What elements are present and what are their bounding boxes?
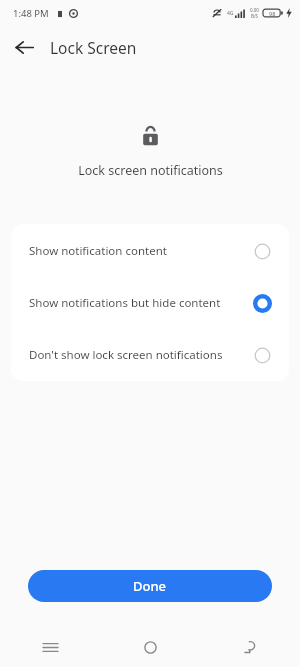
button[interactable]: Don't show lock screen notifications (11, 329, 289, 381)
staticText: Don't show lock screen notifications (29, 347, 254, 363)
button[interactable]: Home (100, 627, 200, 667)
staticText: Show notification content (29, 243, 254, 259)
staticText: Lock Screen (50, 37, 137, 58)
staticText: 1:48 PM (13, 7, 49, 20)
staticText: Show notifications but hide content (29, 295, 254, 311)
staticText: 98 (269, 10, 276, 17)
staticText: 0.00 (250, 7, 259, 13)
staticText: 4G (227, 10, 234, 17)
staticText: Done (133, 577, 167, 595)
staticText: Lock screen notifications (78, 162, 223, 179)
button[interactable]: Show notifications but hide content (11, 277, 289, 329)
button[interactable]: Show notification content (11, 225, 289, 277)
button[interactable]: Back (200, 627, 300, 667)
button[interactable]: Back (6, 29, 42, 65)
button[interactable]: Recent apps (0, 627, 100, 667)
staticText: B/S (251, 13, 259, 19)
button[interactable]: Done (28, 570, 272, 602)
